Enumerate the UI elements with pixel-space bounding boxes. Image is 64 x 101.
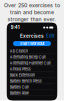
- staticText: Barbell Bench Press: [10, 79, 42, 83]
- staticText: train and become: [10, 9, 54, 16]
- button[interactable]: Barbell Bench Press: [10, 78, 54, 84]
- staticText: Exercises: [20, 33, 44, 39]
- staticText: Alternating Hammer Curl: [10, 61, 51, 65]
- button[interactable]: Arnold Press: [10, 66, 54, 72]
- button[interactable]: Start workout: [13, 41, 51, 46]
- staticText: stronger than ever.: [7, 16, 56, 23]
- staticText: Start workout: [20, 41, 44, 46]
- staticText: Barbell Row: [10, 91, 29, 95]
- button[interactable]: Barbell Row: [10, 90, 54, 96]
- staticText: Back Extension: [10, 73, 35, 77]
- staticText: Alternating Bicep Curl: [10, 55, 46, 59]
- button[interactable]: Alternating Hammer Curl: [10, 60, 54, 66]
- button[interactable]: Back Extension: [10, 72, 54, 78]
- staticText: Ab Crunch: [10, 49, 28, 53]
- staticText: Arnold Press: [10, 67, 31, 71]
- button[interactable]: Barbell Curl: [10, 84, 54, 90]
- staticText: 9:41: [11, 25, 20, 30]
- button[interactable]: Alternating Bicep Curl: [10, 54, 54, 60]
- button[interactable]: Ab Crunch: [10, 48, 54, 54]
- staticText: Over 250 exercises to: [4, 2, 60, 8]
- staticText: Edit: [46, 33, 54, 39]
- staticText: Barbell Curl: [10, 85, 29, 89]
